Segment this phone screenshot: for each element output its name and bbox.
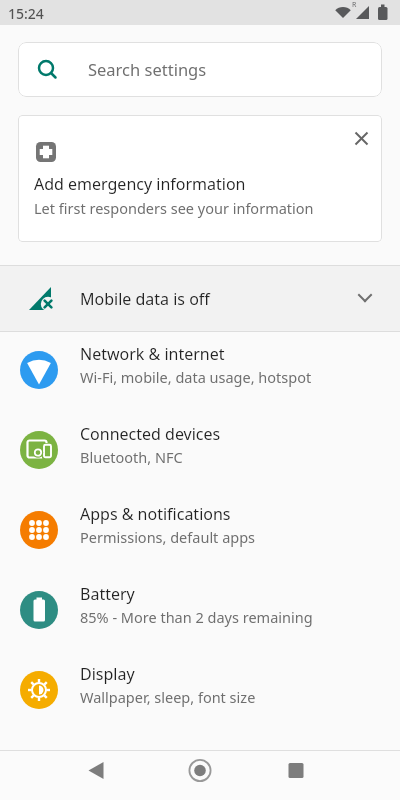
button[interactable]: Display xyxy=(0,650,400,730)
staticText: Connected devices xyxy=(80,423,221,445)
staticText: Search settings xyxy=(88,58,207,80)
staticText: Battery xyxy=(80,583,135,605)
button[interactable]: Connected devices xyxy=(0,410,400,490)
staticText: 85% - More than 2 days remaining xyxy=(80,607,313,627)
button[interactable] xyxy=(267,750,400,800)
button[interactable]: Add emergency information xyxy=(18,115,382,242)
staticText: 15:24 xyxy=(8,4,44,23)
button[interactable] xyxy=(0,750,134,800)
staticText: Bluetooth, NFC xyxy=(80,447,183,467)
staticText: Mobile data is off xyxy=(80,288,210,310)
button[interactable]: Mobile data is off xyxy=(0,265,400,332)
staticText: Network & internet xyxy=(80,343,225,365)
staticText: Apps & notifications xyxy=(80,503,231,525)
button[interactable]: Network & internet xyxy=(0,330,400,410)
staticText: Display xyxy=(80,663,135,685)
staticText: Wallpaper, sleep, font size xyxy=(80,687,256,707)
staticText: Let first responders see your informatio… xyxy=(34,198,314,218)
button[interactable]: Apps & notifications xyxy=(0,490,400,570)
button[interactable]: Battery xyxy=(0,570,400,650)
staticText: Add emergency information xyxy=(34,173,246,195)
staticText: R xyxy=(352,0,357,10)
button[interactable]: Search settings xyxy=(18,42,382,97)
staticText: Wi-Fi, mobile, data usage, hotspot xyxy=(80,367,312,387)
staticText: Permissions, default apps xyxy=(80,527,256,547)
button[interactable] xyxy=(134,750,267,800)
